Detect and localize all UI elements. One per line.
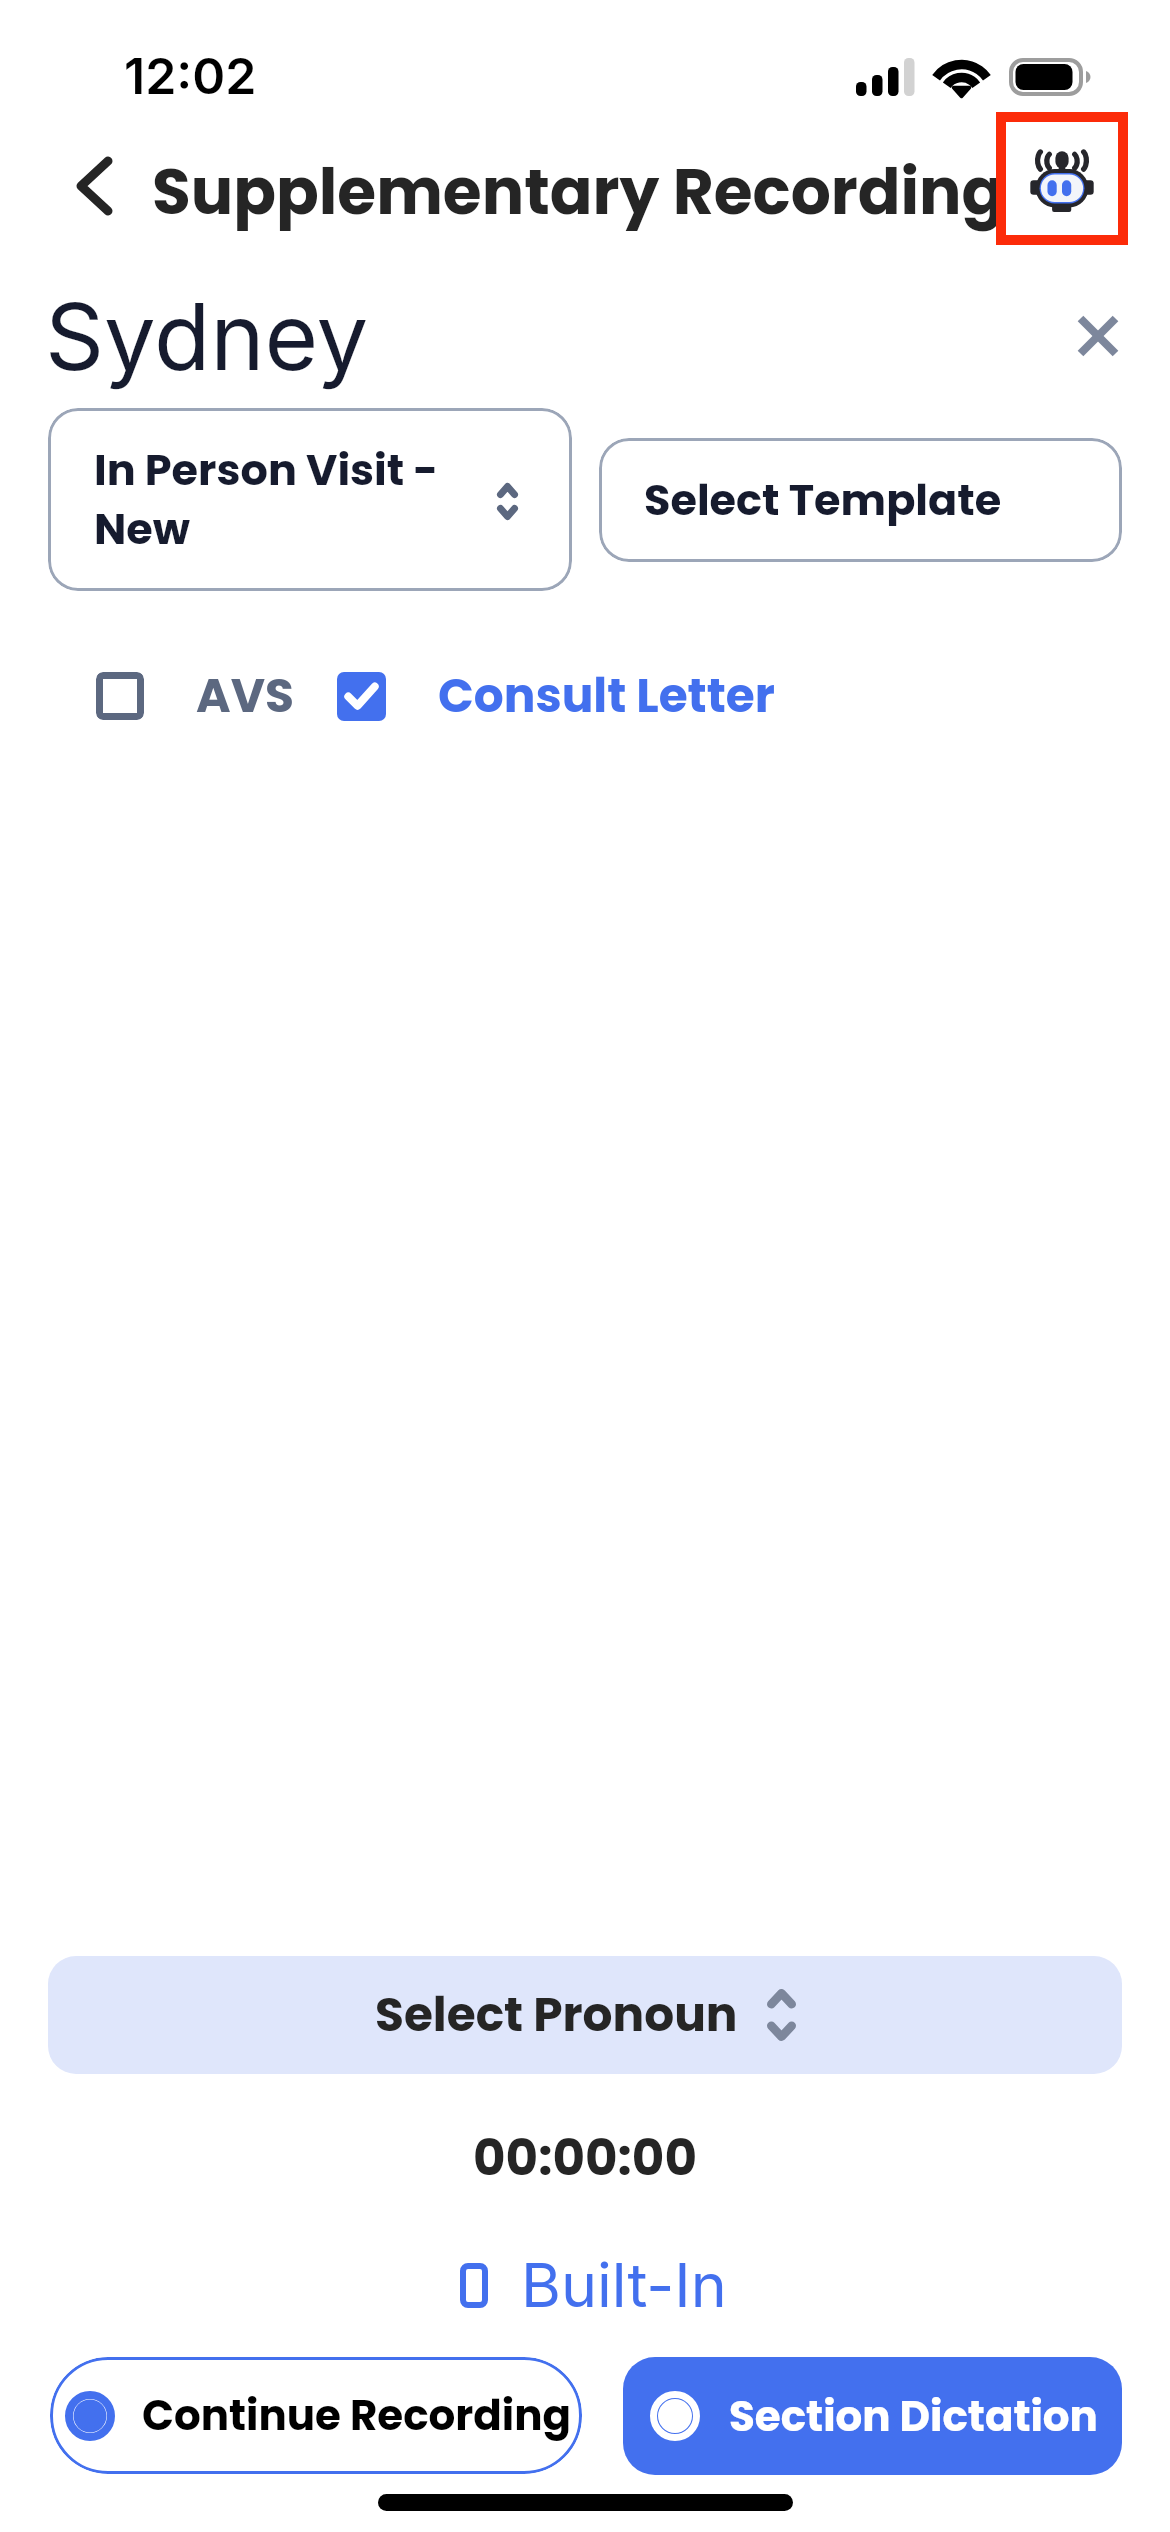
staticText: Sydney <box>45 281 369 392</box>
button[interactable]: In Person Visit - New <box>48 408 572 591</box>
staticText: Supplementary Recording <box>152 148 1005 236</box>
staticText: Select Template <box>644 470 1002 530</box>
button[interactable]: Back <box>56 148 132 224</box>
button[interactable]: Select Template <box>599 438 1122 562</box>
staticText: Section Dictation <box>729 2387 1098 2446</box>
staticText: 00:00:00 <box>473 2123 697 2193</box>
staticText: Consult Letter <box>438 663 775 729</box>
staticText: Continue Recording <box>142 2386 572 2445</box>
staticText: Select Pronoun <box>375 1982 738 2048</box>
button[interactable]: Close <box>1058 296 1138 376</box>
button[interactable]: Built-In <box>444 2248 727 2322</box>
staticText: Built-In <box>521 2248 727 2322</box>
staticText: 12:02 <box>124 46 257 106</box>
button[interactable]: Select Pronoun <box>48 1956 1122 2074</box>
button[interactable]: Section Dictation <box>623 2357 1122 2475</box>
button[interactable]: AVS <box>86 662 304 730</box>
button[interactable]: Continue Recording <box>50 2357 582 2474</box>
staticText: In Person Visit - New <box>94 440 439 559</box>
button[interactable]: AI assistant <box>996 112 1128 245</box>
button[interactable]: Consult Letter <box>327 662 785 730</box>
staticText: AVS <box>196 663 294 729</box>
